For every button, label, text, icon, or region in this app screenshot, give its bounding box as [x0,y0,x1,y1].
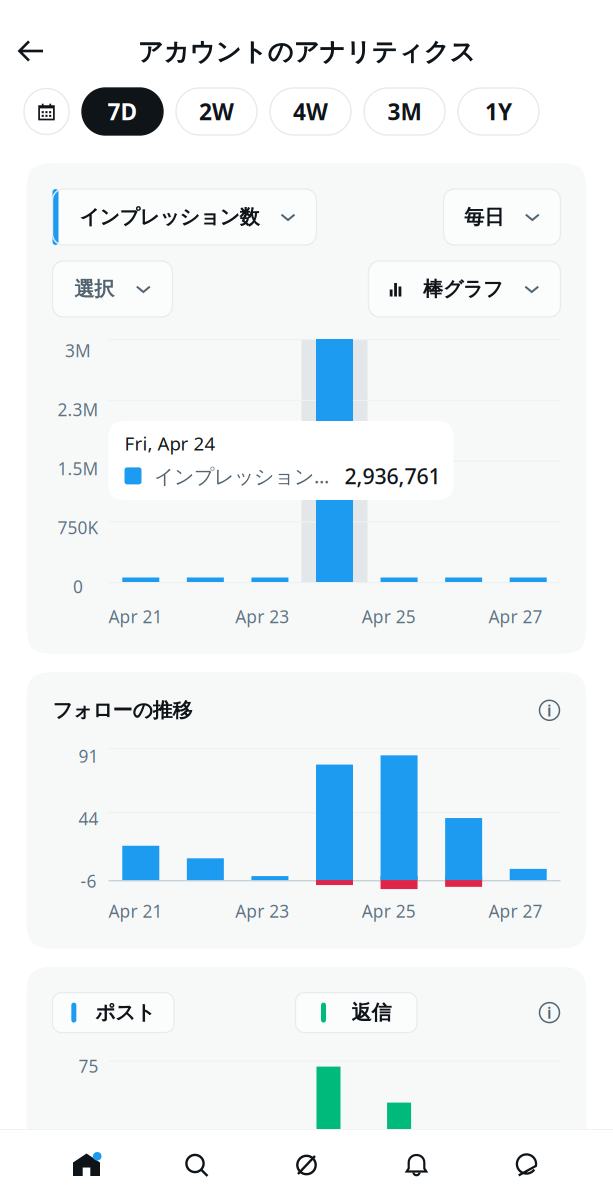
button[interactable]: 棒グラフ [368,261,560,317]
staticText: i [547,1002,552,1023]
button[interactable]: 4W [270,88,351,135]
staticText: インプレッション数 [154,463,330,489]
button[interactable]: Notifications [361,1139,471,1191]
staticText: 2W [199,96,234,126]
button[interactable]: ポスト [52,993,174,1033]
button[interactable]: 返信 [295,993,417,1033]
staticText: 3M [65,339,91,362]
button[interactable]: Messages [471,1139,581,1191]
button[interactable]: Search [141,1139,251,1191]
staticText: Apr 21 [108,900,162,923]
staticText: 2,936,761 [344,462,440,490]
staticText: 44 [78,807,98,830]
staticText: 毎日 [464,205,504,229]
staticText: フォローの推移 [52,698,192,723]
button[interactable]: 1Y [458,88,539,135]
button[interactable]: Info [538,699,560,721]
button[interactable]: Back [0,12,60,76]
button[interactable]: インプレッション数 [52,189,316,245]
staticText: 1.5M [57,457,98,480]
button[interactable]: Info [538,1002,560,1024]
button[interactable]: Home [31,1139,141,1191]
button[interactable]: 2W [176,88,257,135]
staticText: アカウントのアナリティクス [137,36,475,67]
staticText: Apr 25 [362,900,416,923]
staticText: インプレッション数 [79,205,259,229]
staticText: 1Y [485,96,512,126]
staticText: Fri, Apr 24 [124,431,215,456]
staticText: 0 [73,575,83,598]
staticText: 3M [387,96,421,126]
staticText: 7D [107,96,137,126]
staticText: Apr 23 [235,605,289,628]
staticText: 4W [293,96,328,126]
staticText: Apr 21 [108,605,162,628]
button[interactable]: 毎日 [443,189,560,245]
staticText: 750K [57,516,98,539]
staticText: ポスト [95,1000,155,1025]
button[interactable]: Choose date range [24,88,69,134]
staticText: Apr 27 [488,605,542,628]
staticText: 75 [78,1055,98,1078]
staticText: Apr 27 [488,900,542,923]
button[interactable]: 選択 [52,261,172,317]
button[interactable]: Grok [251,1139,361,1191]
button[interactable]: 7D [82,88,163,135]
staticText: 棒グラフ [423,277,503,301]
button[interactable]: 3M [364,88,445,135]
staticText: Apr 23 [235,900,289,923]
staticText: -6 [80,870,96,893]
staticText: Apr 25 [362,605,416,628]
staticText: 返信 [351,1000,391,1025]
staticText: i [547,700,552,721]
staticText: 選択 [74,277,114,301]
staticText: 91 [78,745,98,768]
staticText: 2.3M [57,398,98,421]
